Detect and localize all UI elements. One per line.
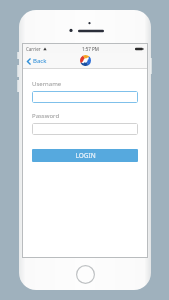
- staticText: Username: [32, 80, 62, 88]
- staticText: Password: [32, 112, 60, 120]
- button[interactable]: [32, 91, 138, 103]
- other: App logo: [80, 55, 91, 66]
- button[interactable]: LOGIN: [32, 149, 138, 162]
- staticText: Carrier: [26, 46, 41, 52]
- staticText: 1:57 PM: [82, 46, 99, 52]
- button[interactable]: Back: [25, 55, 49, 67]
- staticText: Back: [33, 57, 47, 65]
- staticText: LOGIN: [75, 151, 96, 160]
- button[interactable]: [32, 123, 138, 135]
